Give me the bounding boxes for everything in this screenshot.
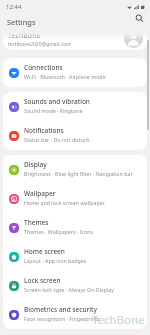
staticText: Status bar · Do not disturb bbox=[24, 136, 90, 143]
staticText: Settings bbox=[7, 17, 36, 27]
staticText: Lock screen bbox=[24, 276, 61, 285]
staticText: Wallpaper bbox=[24, 189, 56, 198]
button[interactable]: Themes bbox=[3, 213, 147, 242]
staticText: Themes · Wallpapers · Icons bbox=[24, 228, 94, 235]
staticText: Display bbox=[24, 160, 47, 169]
staticText: Home screen bbox=[24, 247, 65, 256]
staticText: TechBone bbox=[8, 31, 41, 41]
staticText: Face recognition · Fingerprints bbox=[24, 315, 100, 322]
button[interactable]: Connections bbox=[3, 58, 147, 87]
staticText: Layout · App icon badges bbox=[24, 257, 87, 264]
staticText: Sound mode · Ringtone bbox=[24, 107, 83, 114]
button[interactable]: Home screen bbox=[3, 242, 147, 271]
staticText: 12:44 bbox=[6, 3, 22, 11]
staticText: TechBone bbox=[92, 312, 145, 328]
staticText: Themes bbox=[24, 218, 49, 227]
button[interactable]: Display bbox=[3, 155, 147, 184]
button[interactable]: Notifications bbox=[3, 121, 147, 150]
staticText: Home and lock screen wallpaper bbox=[24, 199, 105, 206]
staticText: Wi-Fi · Bluetooth · Airplane mode bbox=[24, 73, 106, 80]
staticText: Connections bbox=[24, 63, 63, 72]
staticText: techbone2020@gmail.com bbox=[8, 41, 71, 48]
button[interactable]: Biometrics and security bbox=[3, 300, 147, 329]
staticText: Biometrics and security bbox=[24, 305, 97, 314]
button[interactable]: Wallpaper bbox=[3, 184, 147, 213]
button[interactable]: Sounds and vibration bbox=[3, 92, 147, 121]
staticText: Screen lock type · Always On Display bbox=[24, 286, 114, 293]
button[interactable]: TechBone bbox=[3, 26, 147, 50]
staticText: Sounds and vibration bbox=[24, 97, 90, 106]
button[interactable]: Search bbox=[132, 11, 146, 25]
button[interactable]: Lock screen bbox=[3, 271, 147, 300]
staticText: Notifications bbox=[24, 126, 64, 135]
staticText: Brightness · Blue light filter · Navigat… bbox=[24, 170, 133, 177]
